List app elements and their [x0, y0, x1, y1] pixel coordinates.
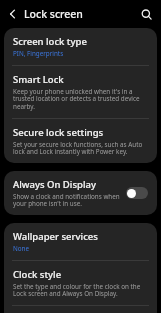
- staticText: PIN, Fingerprints: [13, 49, 64, 58]
- staticText: Wallpaper services: [13, 230, 98, 243]
- button[interactable]: Search: [135, 3, 157, 25]
- staticText: Always On Display: [13, 178, 96, 191]
- button[interactable]: Clock style: [4, 261, 157, 305]
- button[interactable]: Toggle off: [126, 187, 148, 199]
- button[interactable]: Always On Display: [4, 171, 157, 215]
- button[interactable]: Screen lock type: [4, 28, 157, 65]
- button[interactable]: Smart Lock: [4, 66, 157, 118]
- staticText: Smart Lock: [13, 73, 64, 86]
- staticText: Show a clock and notifications when your…: [13, 192, 120, 208]
- button[interactable]: Back: [2, 3, 24, 25]
- staticText: None: [13, 244, 30, 253]
- staticText: Set your secure lock functions, such as …: [13, 140, 148, 156]
- staticText: Secure lock settings: [13, 126, 104, 139]
- staticText: Lock screen: [24, 7, 83, 21]
- button[interactable]: Wallpaper services: [4, 223, 157, 260]
- staticText: Set the type and colour for the clock on…: [13, 282, 148, 298]
- staticText: Keep your phone unlocked when it's in a …: [13, 87, 148, 111]
- staticText: Screen lock type: [13, 35, 87, 48]
- button[interactable]: Secure lock settings: [4, 119, 157, 163]
- staticText: Clock style: [13, 268, 62, 281]
